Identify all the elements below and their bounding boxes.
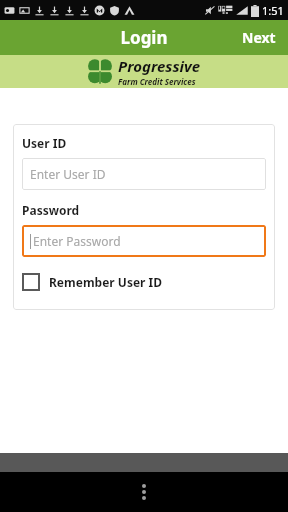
button[interactable]: More options xyxy=(127,475,161,509)
staticText: Farm Credit Services xyxy=(118,76,196,87)
staticText: Enter User ID xyxy=(30,166,106,182)
staticText: Login xyxy=(120,26,168,49)
staticText: Progressive xyxy=(118,56,201,76)
staticText: Password xyxy=(22,202,80,218)
button[interactable]: Enter User ID xyxy=(22,158,266,190)
button[interactable]: Next xyxy=(230,22,288,53)
staticText: Next xyxy=(242,28,276,47)
staticText: User ID xyxy=(22,135,67,151)
staticText: 1:51 xyxy=(262,3,284,18)
staticText: Remember User ID xyxy=(49,274,163,290)
staticText: Enter Password xyxy=(33,233,121,249)
button[interactable]: Remember User ID xyxy=(22,271,163,293)
button[interactable]: Enter Password xyxy=(22,225,266,257)
